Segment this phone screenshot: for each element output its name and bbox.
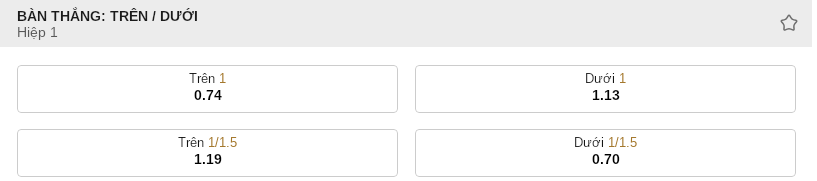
button[interactable]: Dưới 1 <box>415 65 796 113</box>
button[interactable]: BÀN THẮNG: TRÊN / DƯỚI <box>0 0 812 47</box>
button[interactable]: Dưới 1/1.5 <box>415 129 796 177</box>
staticText: BÀN THẮNG: TRÊN / DƯỚI <box>17 8 198 24</box>
staticText: Dưới 1 <box>585 72 626 86</box>
staticText: Trên 1/1.5 <box>178 136 237 150</box>
staticText: Hiệp 1 <box>17 24 58 40</box>
staticText: Trên 1 <box>189 72 226 86</box>
staticText: Dưới 1/1.5 <box>574 136 637 150</box>
button[interactable]: Trên 1 <box>17 65 398 113</box>
button[interactable]: Trên 1/1.5 <box>17 129 398 177</box>
staticText: 0.74 <box>194 87 222 103</box>
staticText: 1.19 <box>194 151 222 167</box>
staticText: 1.13 <box>592 87 620 103</box>
button[interactable]: Favorite <box>778 12 800 34</box>
staticText: 0.70 <box>592 151 620 167</box>
